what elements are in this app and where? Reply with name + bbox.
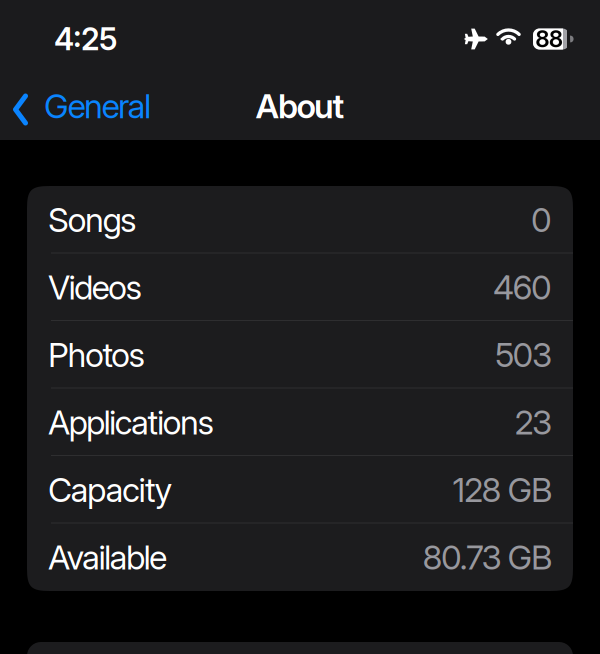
staticText: 128 GB bbox=[452, 470, 552, 509]
staticText: About bbox=[255, 86, 344, 126]
staticText: 460 bbox=[493, 268, 552, 307]
staticText: 23 bbox=[514, 403, 552, 442]
staticText: Photos bbox=[48, 335, 145, 374]
staticText: 503 bbox=[495, 335, 552, 374]
staticText: Available bbox=[48, 538, 167, 577]
staticText: General bbox=[44, 86, 151, 126]
staticText: Songs bbox=[48, 200, 137, 239]
staticText: Applications bbox=[48, 403, 214, 442]
staticText: 80.73 GB bbox=[422, 538, 552, 577]
staticText: Videos bbox=[48, 268, 142, 307]
staticText: 0 bbox=[531, 200, 552, 239]
staticText: Capacity bbox=[48, 470, 172, 509]
button[interactable]: Back to General bbox=[0, 86, 151, 126]
staticText: 88 bbox=[535, 26, 563, 52]
staticText: 4:25 bbox=[54, 21, 117, 57]
